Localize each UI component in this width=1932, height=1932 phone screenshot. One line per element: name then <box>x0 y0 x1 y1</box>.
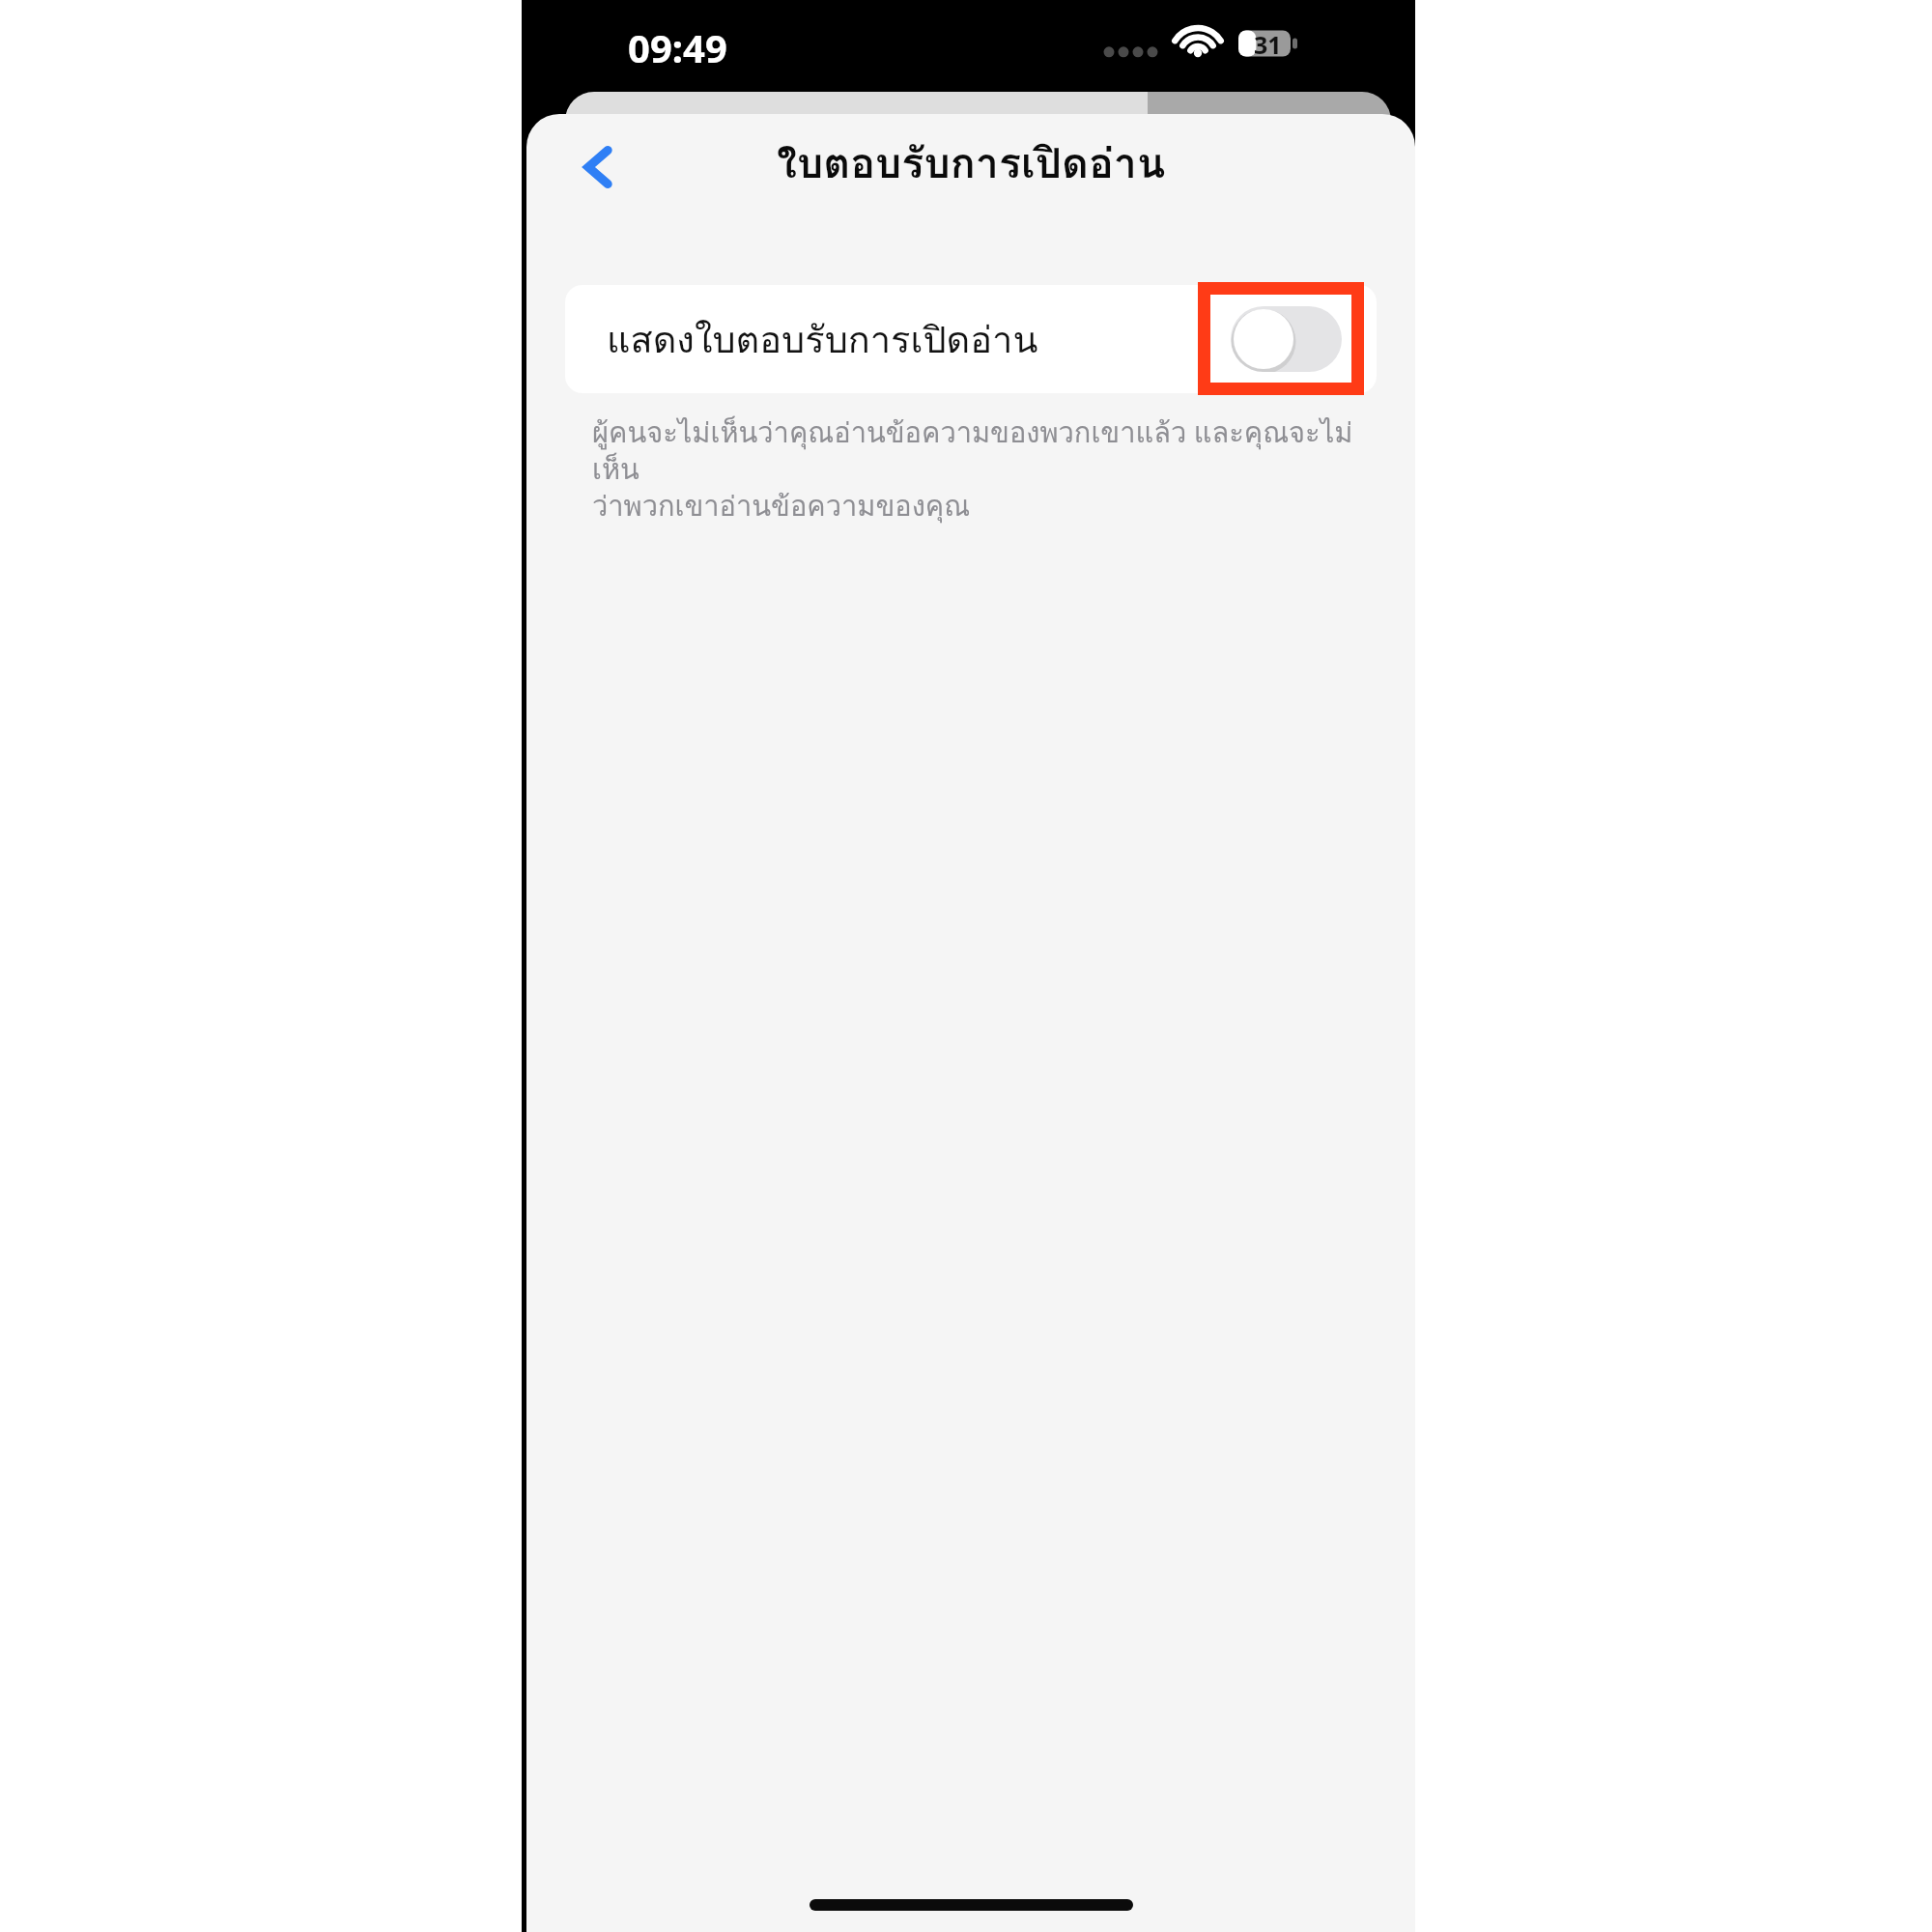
staticText: 09:49 <box>628 21 727 73</box>
staticText: 31 <box>1254 28 1282 61</box>
button[interactable]: Show read receipts toggle, off <box>1231 306 1342 372</box>
staticText: ใบตอบรับการเปิดอ่าน <box>777 130 1166 196</box>
staticText: แสดงใบตอบรับการเปิดอ่าน <box>607 310 1231 368</box>
button[interactable]: แสดงใบตอบรับการเปิดอ่าน <box>565 285 1377 393</box>
button[interactable]: Back <box>555 124 642 211</box>
staticText: ผู้คนจะไม่เห็นว่าคุณอ่านข้อความของพวกเขา… <box>592 411 1355 528</box>
